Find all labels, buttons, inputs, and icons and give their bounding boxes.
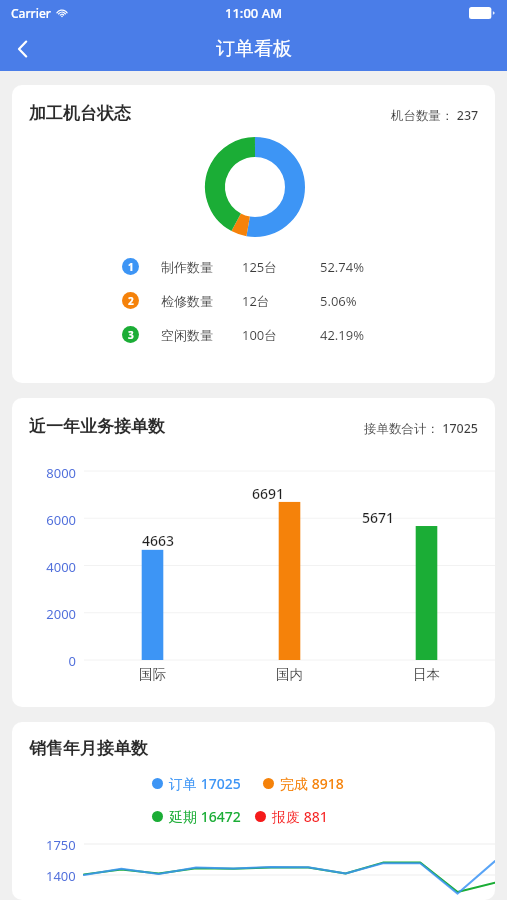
staticText: 加工机台状态 [29,103,131,124]
staticText: 5671 [362,508,395,527]
staticText: 日本 [413,666,440,683]
staticText: 检修数量 [161,293,213,309]
staticText: 6000 [46,511,76,529]
staticText: 8000 [46,464,76,482]
staticText: 125台 [242,258,278,275]
staticText: 2 [128,294,134,308]
staticText: 5.06% [320,292,357,309]
staticText: 1400 [46,867,76,885]
staticText: 0 [68,652,76,670]
staticText: 订单看板 [216,37,292,61]
staticText: 3 [128,328,134,342]
staticText: Carrier [11,5,51,21]
staticText: 1750 [46,836,76,854]
staticText: 11:00 AM [225,4,283,22]
staticText: 6691 [252,484,285,503]
staticText: 52.74% [320,258,365,275]
staticText: 订单 17025 [169,774,241,793]
staticText: 4663 [142,531,175,550]
button[interactable]: 近一年业务接单数 [12,398,495,707]
staticText: 空闲数量 [161,327,213,343]
button[interactable]: Back [0,26,45,71]
staticText: 国际 [139,666,166,683]
staticText: 近一年业务接单数 [29,416,165,437]
staticText: 100台 [242,326,278,343]
staticText: 2000 [46,605,76,623]
button[interactable]: 加工机台状态 [12,85,495,383]
staticText: 接单数合计： 17025 [364,420,479,437]
staticText: 完成 8918 [280,774,344,793]
staticText: 4000 [46,558,76,576]
staticText: 制作数量 [161,259,213,275]
staticText: 机台数量： 237 [391,107,479,124]
button[interactable]: 销售年月接单数 [12,722,495,900]
staticText: 1 [128,260,134,274]
staticText: 销售年月接单数 [29,738,148,759]
staticText: 报废 881 [272,807,328,826]
staticText: 国内 [276,666,303,683]
staticText: 12台 [242,292,270,309]
staticText: 42.19% [320,326,365,343]
staticText: 延期 16472 [169,807,241,826]
